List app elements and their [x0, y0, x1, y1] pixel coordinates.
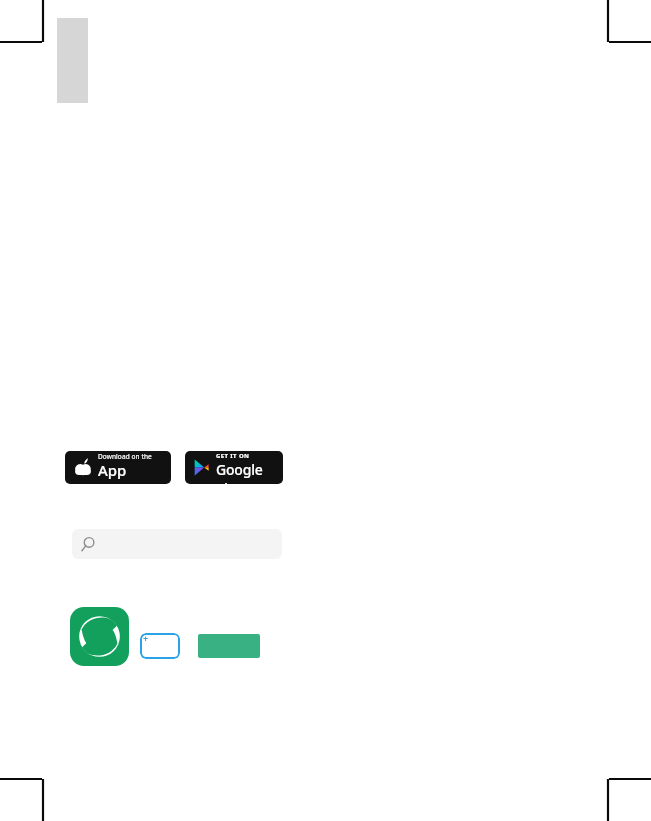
staticText: App Store	[98, 460, 163, 484]
staticText: GET IT ON	[216, 452, 250, 460]
staticText: Google Play	[216, 460, 276, 484]
button[interactable]: Download on the App Store	[65, 451, 171, 484]
button[interactable]: Get it on Google Play	[185, 451, 283, 484]
staticText: Download on the	[98, 452, 152, 461]
button[interactable]: Add	[140, 633, 180, 659]
button[interactable]: Action	[198, 634, 260, 658]
button[interactable]: Search	[72, 529, 282, 559]
button[interactable]: App icon	[70, 607, 129, 666]
staticText: +	[143, 633, 149, 644]
